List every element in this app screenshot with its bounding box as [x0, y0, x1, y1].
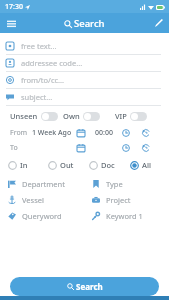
- button[interactable]: Pick time: [119, 141, 132, 154]
- button[interactable]: Department: [0, 176, 84, 192]
- button[interactable]: Own: [63, 111, 115, 121]
- button[interactable]: Reset: [139, 141, 152, 154]
- button[interactable]: from/to/cc...: [0, 72, 169, 89]
- button[interactable]: Queryword: [0, 208, 84, 224]
- button[interactable]: In: [8, 160, 48, 170]
- button[interactable]: Doc: [89, 160, 130, 170]
- button[interactable]: VIP: [115, 111, 162, 121]
- button[interactable]: Pick time: [119, 126, 132, 139]
- staticText: Keyword 1: [106, 211, 143, 221]
- staticText: Search: [76, 281, 103, 292]
- staticText: addressee code...: [21, 58, 83, 68]
- staticText: Search: [74, 17, 105, 30]
- staticText: All: [142, 160, 151, 170]
- button[interactable]: Pick date: [74, 141, 87, 154]
- staticText: Own: [63, 111, 80, 121]
- staticText: from/to/cc...: [21, 75, 65, 85]
- button[interactable]: Menu: [3, 15, 19, 31]
- button[interactable]: Compose: [150, 15, 166, 31]
- button[interactable]: Pick date: [74, 126, 87, 139]
- button[interactable]: subject...: [0, 89, 169, 106]
- staticText: To: [10, 143, 32, 153]
- staticText: subject...: [21, 92, 53, 102]
- button[interactable]: free text...: [0, 38, 169, 55]
- staticText: Queryword: [22, 211, 62, 221]
- button[interactable]: Vessel: [0, 192, 84, 208]
- staticText: Project: [106, 195, 131, 205]
- staticText: From: [10, 128, 32, 138]
- button[interactable]: Type: [84, 176, 169, 192]
- staticText: Department: [22, 179, 65, 189]
- button[interactable]: Project: [84, 192, 169, 208]
- staticText: Unseen: [10, 111, 38, 121]
- staticText: Out: [60, 160, 74, 170]
- button[interactable]: Unseen: [10, 111, 63, 121]
- button[interactable]: Out: [48, 160, 89, 170]
- button[interactable]: addressee code...: [0, 55, 169, 72]
- button[interactable]: Keyword 1: [84, 208, 169, 224]
- button[interactable]: Reset: [139, 126, 152, 139]
- button[interactable]: All: [130, 160, 163, 170]
- staticText: Type: [106, 179, 123, 189]
- staticText: 00:00: [95, 128, 113, 138]
- staticText: In: [20, 160, 28, 170]
- staticText: Vessel: [22, 195, 44, 205]
- staticText: Doc: [101, 160, 115, 170]
- staticText: 1 Week Ago: [32, 128, 72, 138]
- button[interactable]: Search: [10, 277, 159, 296]
- staticText: free text...: [21, 41, 57, 51]
- staticText: 17:30: [5, 2, 23, 12]
- staticText: VIP: [115, 111, 127, 121]
